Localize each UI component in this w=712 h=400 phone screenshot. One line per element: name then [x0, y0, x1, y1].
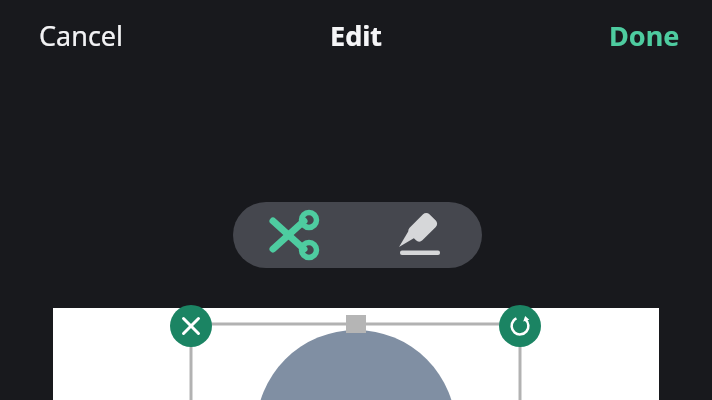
button[interactable]: Done	[592, 9, 696, 61]
button[interactable]: Delete	[170, 305, 212, 347]
button[interactable]: Trim	[233, 202, 357, 268]
staticText: Edit	[330, 17, 382, 54]
button[interactable]: Cancel	[20, 9, 142, 61]
button[interactable]: Draw	[358, 202, 482, 268]
staticText: Cancel	[39, 17, 124, 54]
button[interactable]: Rotate	[499, 305, 541, 347]
staticText: Done	[609, 17, 680, 54]
